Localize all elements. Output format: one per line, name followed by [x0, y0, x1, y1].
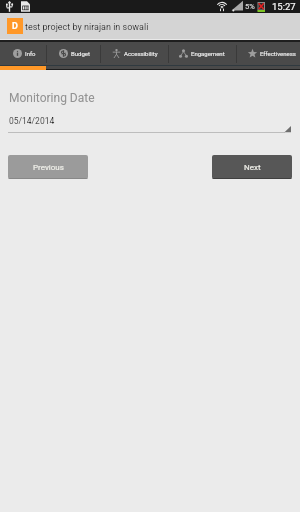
- button[interactable]: Accessibility: [100, 42, 168, 65]
- staticText: Next: [244, 163, 261, 172]
- staticText: D: [12, 21, 18, 32]
- staticText: Info: [25, 50, 36, 57]
- button[interactable]: Next: [212, 155, 292, 179]
- button[interactable]: Budget: [46, 42, 100, 65]
- staticText: 15:27: [272, 1, 296, 12]
- staticText: Accessibility: [124, 50, 158, 57]
- staticText: Budget: [71, 50, 90, 57]
- button[interactable]: Previous: [8, 155, 88, 179]
- button[interactable]: Effectiveness: [236, 42, 300, 65]
- staticText: Engagement: [191, 50, 225, 57]
- staticText: 5%: [245, 2, 255, 11]
- staticText: Monitoring Date: [9, 91, 95, 105]
- button[interactable]: Info: [0, 42, 46, 65]
- staticText: Previous: [33, 163, 64, 172]
- staticText: Effectiveness: [260, 50, 296, 57]
- staticText: test project by nirajan in sowali: [25, 22, 149, 33]
- button[interactable]: Engagement: [168, 42, 236, 65]
- staticText: 05/14/2014: [9, 116, 55, 126]
